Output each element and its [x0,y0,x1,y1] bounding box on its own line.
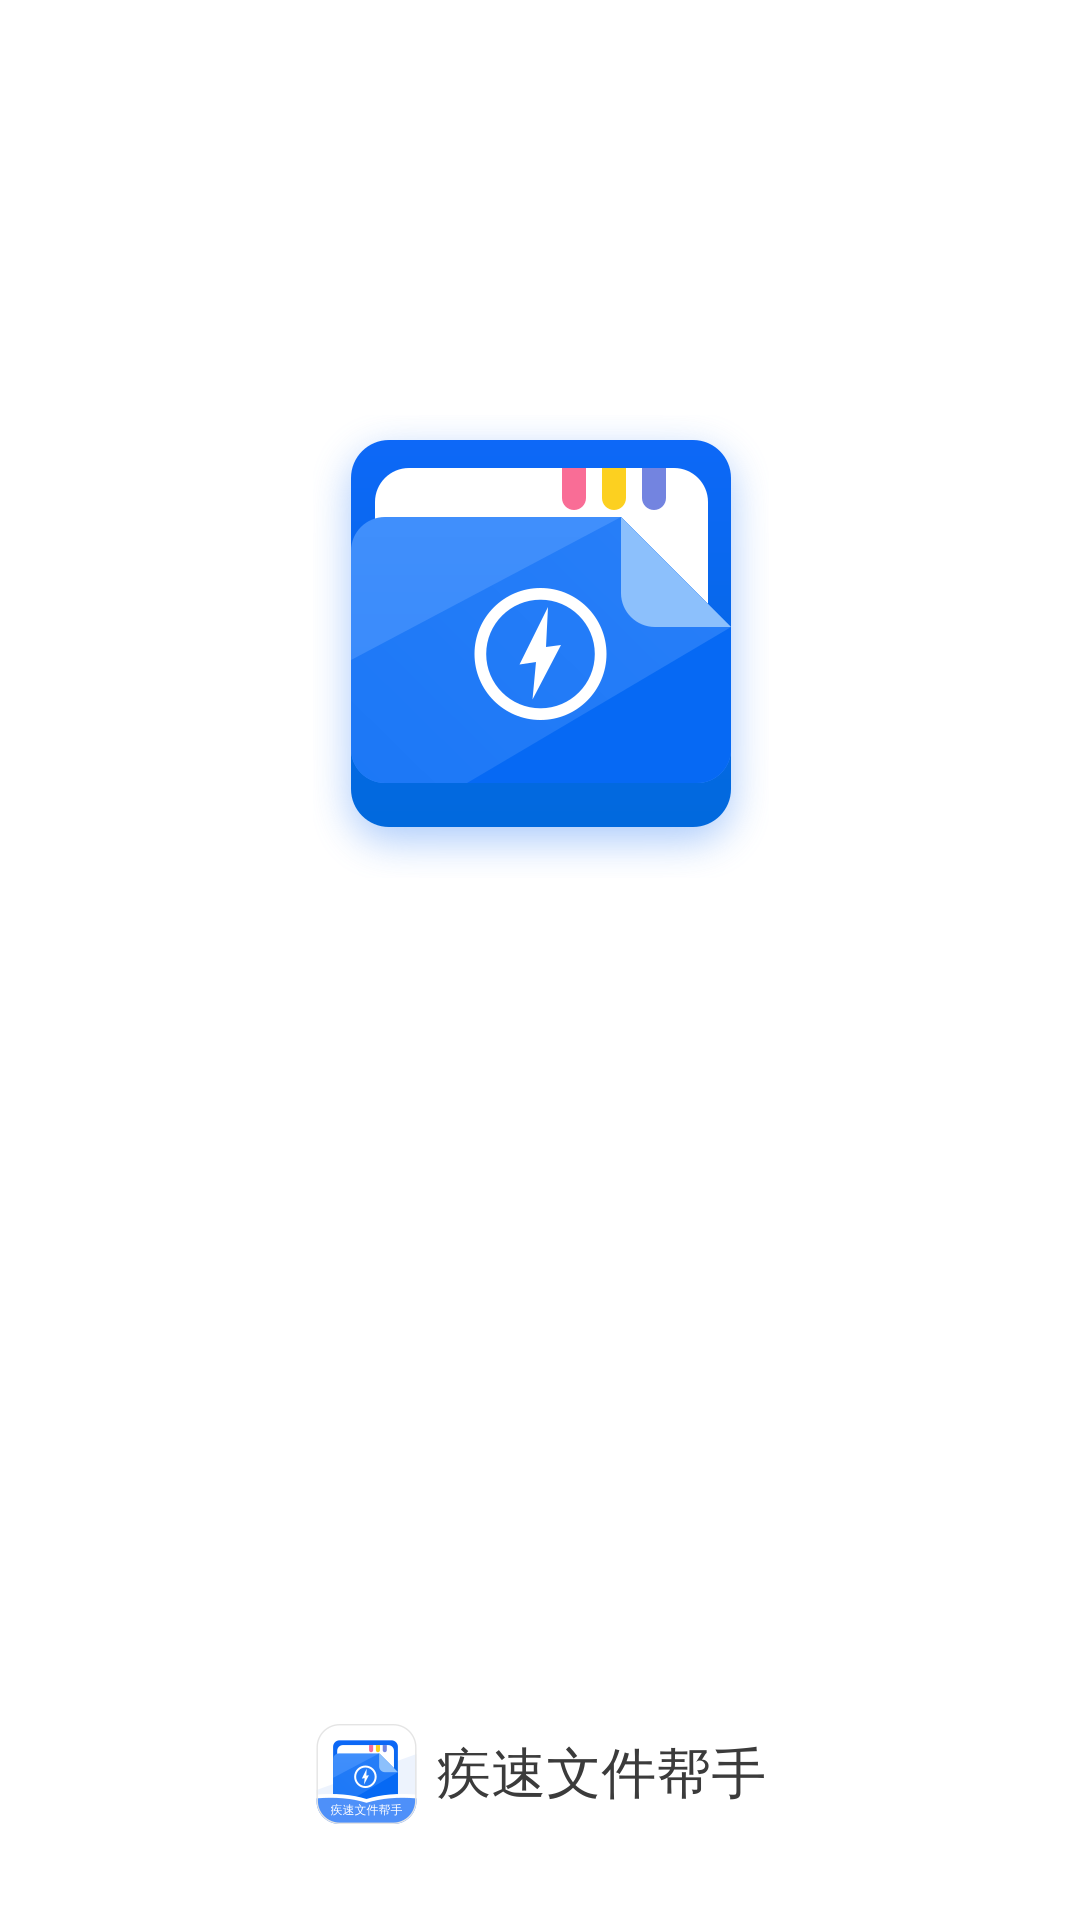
staticText: 疾速文件帮手 [436,1740,766,1807]
staticText: 疾速文件帮手 [330,1803,402,1817]
